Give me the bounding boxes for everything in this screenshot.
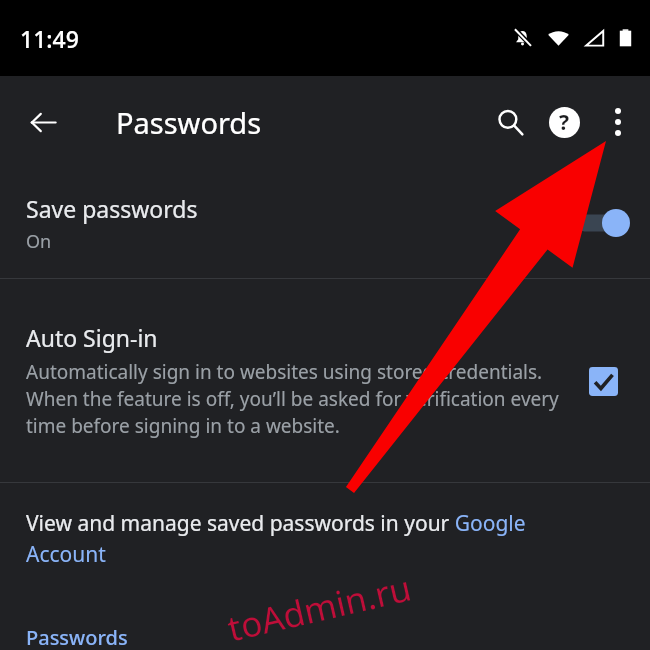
button[interactable]: Save passwords (0, 168, 650, 278)
staticText: 11:49 (20, 23, 79, 54)
button[interactable]: Auto Sign-in (0, 279, 650, 482)
staticText: View and manage saved passwords in your … (26, 509, 606, 568)
button[interactable]: Search (483, 95, 537, 149)
staticText: On (26, 229, 52, 254)
button[interactable]: View and manage saved passwords in your … (0, 483, 650, 568)
staticText: Passwords (116, 103, 262, 142)
staticText: toAdmin.ru (223, 564, 416, 650)
staticText: Automatically sign in to websites using … (26, 359, 562, 439)
staticText: Save passwords (26, 193, 198, 224)
staticText: Auto Sign-in (26, 322, 158, 353)
staticText: ? (559, 108, 570, 137)
button[interactable]: More options (591, 95, 645, 149)
button[interactable]: Back (17, 96, 69, 148)
button[interactable]: Help (537, 95, 591, 149)
staticText: Passwords (26, 624, 128, 650)
